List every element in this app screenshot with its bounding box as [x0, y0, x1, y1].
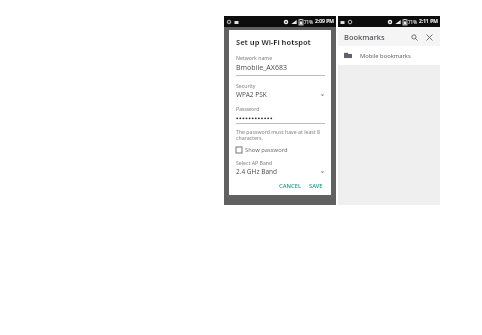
button[interactable]: Close — [423, 31, 435, 43]
staticText: WPA2 PSK — [236, 90, 320, 99]
staticText: Mobile bookmarks — [360, 52, 411, 60]
button[interactable]: Bmobile_AX683 — [236, 63, 325, 76]
button[interactable]: CANCEL — [277, 181, 303, 191]
staticText: SAVE — [309, 182, 323, 190]
staticText: Show password — [245, 146, 288, 154]
staticText: 2:11 PM — [419, 18, 438, 25]
staticText: Bookmarks — [344, 32, 408, 42]
staticText: 71% — [408, 19, 417, 25]
staticText: Network name — [236, 54, 273, 61]
button[interactable]: Mobile bookmarks — [338, 46, 440, 65]
button[interactable]: SAVE — [307, 181, 325, 191]
other: Expand dropdown — [320, 170, 325, 174]
button[interactable]: WPA2 PSK — [236, 90, 325, 99]
staticText: Set up Wi-Fi hotspot — [236, 37, 311, 47]
staticText: 2.4 GHz Band — [236, 167, 320, 176]
staticText: Security — [236, 82, 256, 89]
button[interactable]: Search bookmarks — [408, 31, 420, 43]
other: Expand dropdown — [320, 93, 325, 97]
staticText: CANCEL — [279, 182, 301, 190]
button[interactable]: 2.4 GHz Band — [236, 167, 325, 176]
staticText: 2:09 PM — [315, 18, 334, 25]
staticText: The password must have at least 8 charac… — [236, 128, 325, 142]
staticText: Bmobile_AX683 — [236, 63, 287, 73]
staticText: 71% — [304, 19, 313, 25]
button[interactable] — [236, 114, 325, 124]
button[interactable]: Show password — [236, 146, 325, 154]
staticText: Password — [236, 105, 260, 112]
staticText: Select AP Band — [236, 159, 273, 166]
